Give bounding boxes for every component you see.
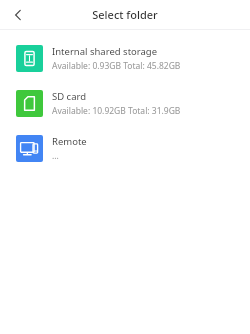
button[interactable]: Internal shared storage <box>0 36 250 81</box>
button[interactable]: Remote <box>0 126 250 171</box>
button[interactable]: Back <box>6 3 30 27</box>
staticText: Remote <box>52 135 87 148</box>
staticText: Select folder <box>92 7 158 22</box>
staticText: SD card <box>52 90 87 103</box>
button[interactable]: SD card <box>0 81 250 126</box>
staticText: Available: 10.92GB Total: 31.9GB <box>52 105 181 117</box>
staticText: Internal shared storage <box>52 45 158 58</box>
staticText: ... <box>52 150 59 162</box>
staticText: Available: 0.93GB Total: 45.82GB <box>52 60 181 72</box>
